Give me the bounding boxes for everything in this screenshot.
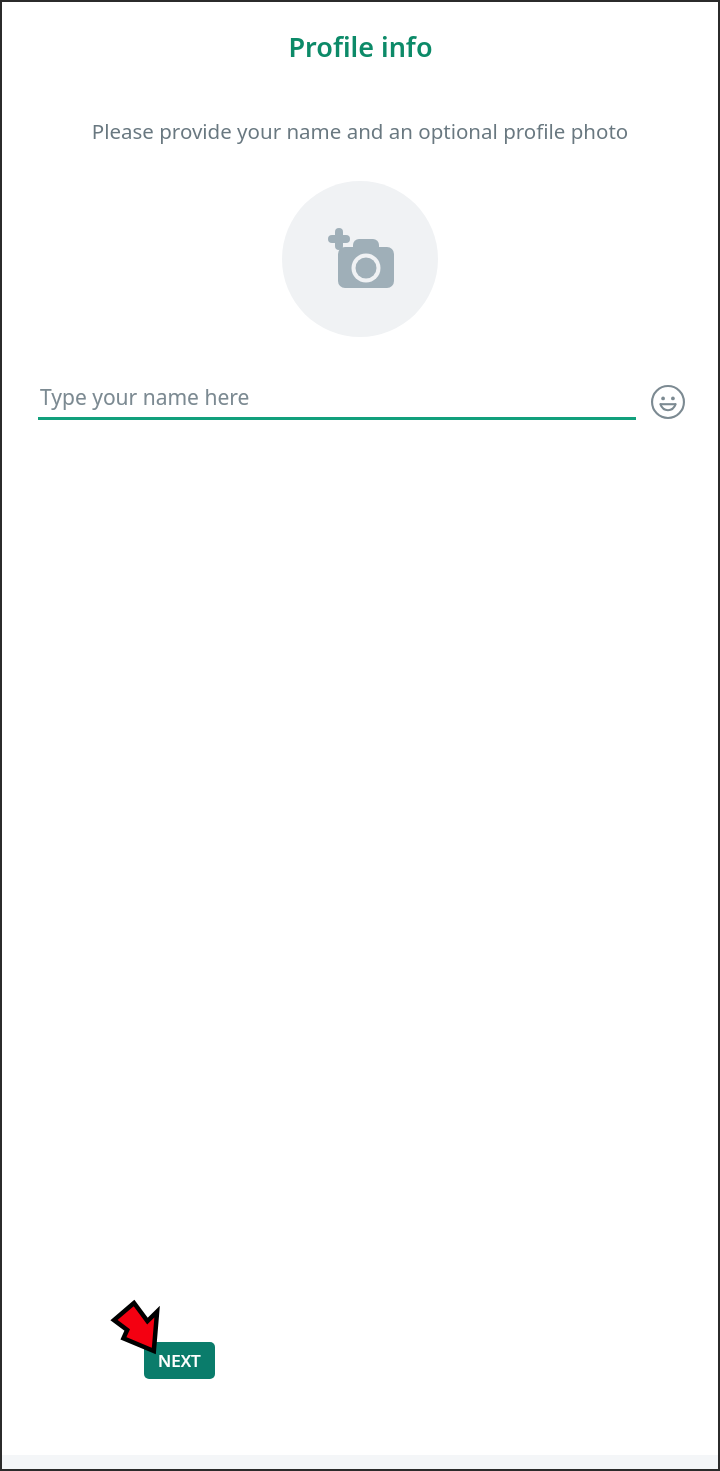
button[interactable]: Add profile photo (282, 181, 438, 337)
staticText: Please provide your name and an optional… (14, 117, 706, 145)
staticText: NEXT (158, 1349, 201, 1372)
button[interactable]: Type your name here (38, 383, 636, 420)
button[interactable]: Emoji (650, 384, 686, 420)
staticText: Profile info (288, 28, 433, 65)
staticText: Type your name here (40, 383, 250, 412)
button[interactable]: NEXT (144, 1342, 215, 1379)
